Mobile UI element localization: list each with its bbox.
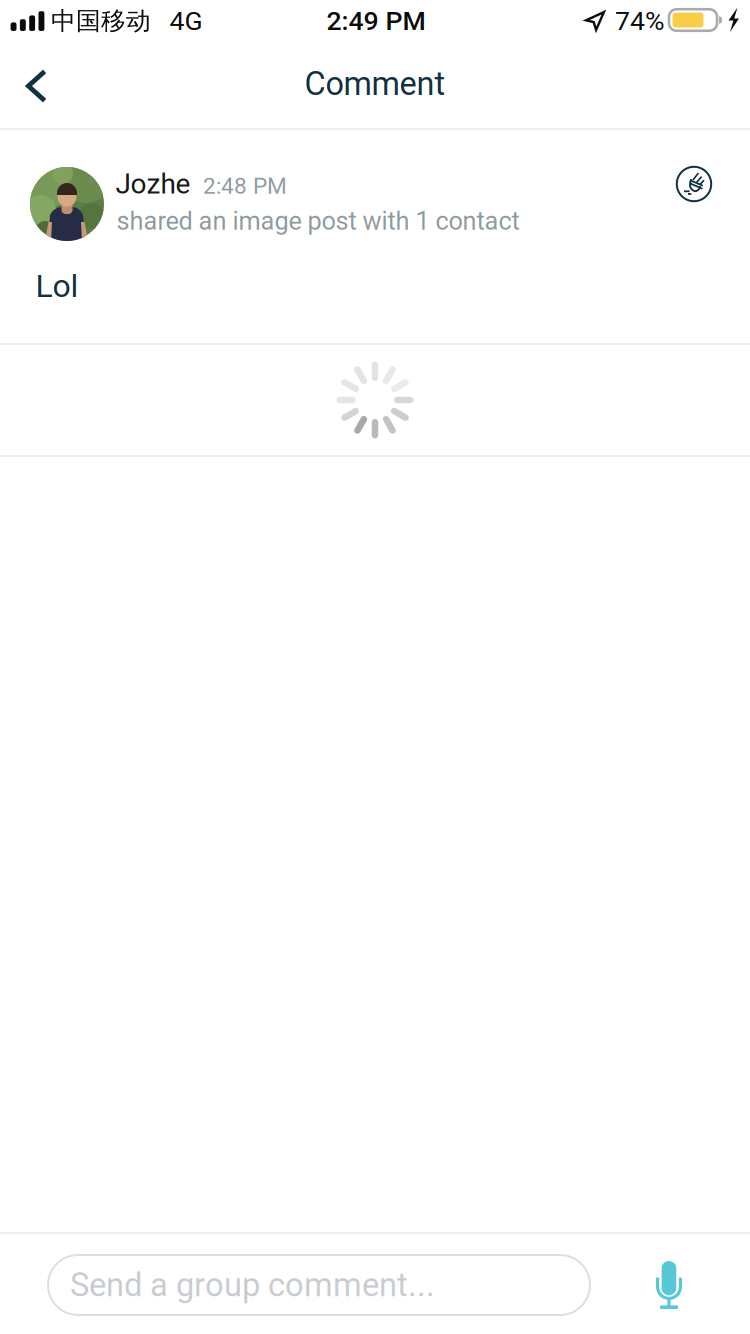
button[interactable]: Reaction xyxy=(666,156,722,212)
staticText: 2:49 PM xyxy=(326,5,425,37)
button[interactable]: Send a group comment... xyxy=(48,1255,590,1315)
staticText: Jozhe xyxy=(115,168,190,200)
staticText: Lol xyxy=(35,267,78,305)
staticText: Comment xyxy=(304,65,445,103)
button[interactable]: Back xyxy=(0,47,75,125)
button[interactable]: Record voice comment xyxy=(619,1235,719,1334)
staticText: shared an image post with 1 contact xyxy=(116,206,519,236)
staticText: 2:48 PM xyxy=(203,173,287,199)
staticText: 4G xyxy=(169,5,202,37)
staticText: 74% xyxy=(615,5,665,37)
staticText: Send a group comment... xyxy=(70,1266,435,1304)
staticText: 中国移动 xyxy=(51,5,151,37)
